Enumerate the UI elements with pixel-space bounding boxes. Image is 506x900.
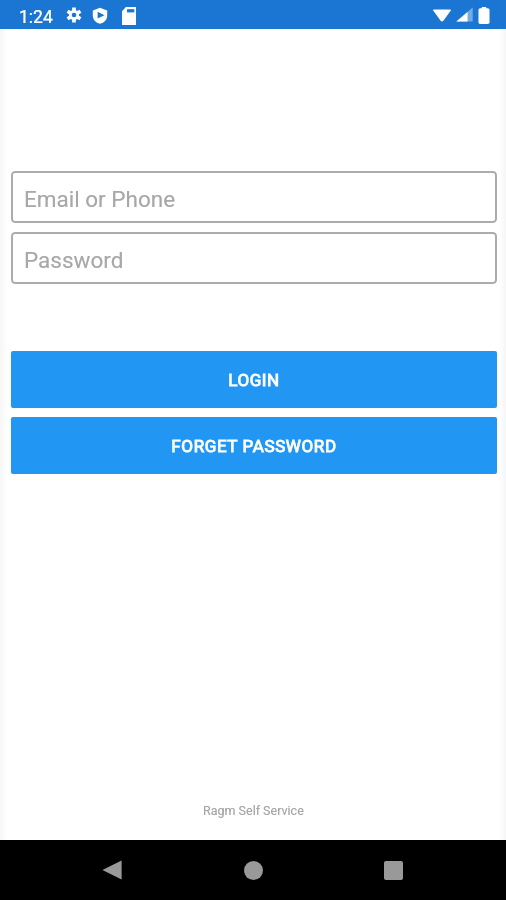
staticText: FORGET PASSWORD	[171, 436, 337, 456]
button[interactable]: Email or Phone	[11, 171, 497, 223]
button[interactable]: Home	[229, 846, 277, 894]
staticText: Password	[24, 247, 124, 273]
button[interactable]: Back	[88, 846, 136, 894]
staticText: Email or Phone	[24, 186, 176, 212]
button[interactable]: Recents	[369, 846, 417, 894]
staticText: 1:24	[19, 7, 53, 28]
button[interactable]: Password	[11, 232, 497, 284]
staticText: LOGIN	[228, 370, 280, 390]
staticText: Ragm Self Service	[203, 803, 304, 818]
button[interactable]: LOGIN	[11, 351, 497, 408]
button[interactable]: FORGET PASSWORD	[11, 417, 497, 474]
